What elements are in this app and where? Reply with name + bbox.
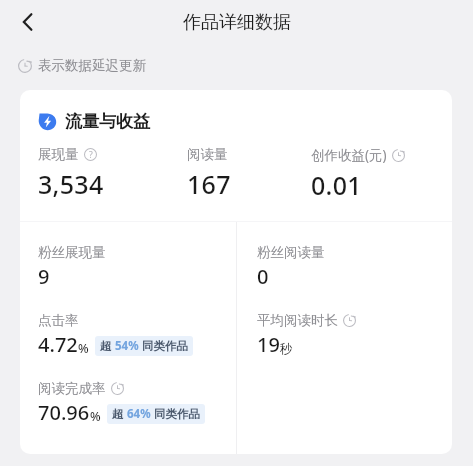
staticText: 0 [257, 263, 269, 290]
staticText: 作品详细数据 [183, 11, 291, 34]
staticText: ? [89, 149, 93, 161]
button[interactable]: Back [9, 3, 47, 41]
staticText: 秒 [280, 341, 293, 357]
staticText: 4.72 [38, 331, 78, 358]
button[interactable]: 超 [107, 404, 205, 424]
button[interactable]: 点击率 [38, 312, 193, 358]
staticText: 同类作品 [139, 338, 188, 354]
button[interactable]: 粉丝展现量 [38, 244, 106, 290]
staticText: 阅读完成率 [38, 380, 106, 397]
staticText: 167 [187, 167, 231, 201]
button[interactable]: 创作收益(元) [311, 146, 452, 202]
button[interactable]: 粉丝阅读量 [257, 244, 325, 290]
staticText: 超 [112, 406, 127, 422]
staticText: 表示数据延迟更新 [38, 57, 146, 74]
staticText: % [90, 408, 101, 425]
staticText: 3,534 [38, 167, 104, 201]
staticText: 平均阅读时长 [257, 312, 338, 329]
staticText: 粉丝阅读量 [257, 244, 325, 261]
staticText: 粉丝展现量 [38, 244, 106, 261]
staticText: 19 [257, 331, 280, 358]
button[interactable]: 流量与收益 [38, 111, 150, 132]
staticText: % [78, 340, 89, 357]
staticText: 流量与收益 [65, 111, 150, 132]
staticText: 超 [100, 338, 115, 354]
staticText: 创作收益(元) [311, 146, 387, 164]
button[interactable]: 平均阅读时长 [257, 312, 356, 358]
staticText: 9 [38, 263, 50, 290]
button[interactable]: 表示数据延迟更新 [18, 57, 146, 74]
staticText: 64% [127, 406, 151, 422]
staticText: 70.96 [38, 399, 90, 426]
button[interactable]: 阅读完成率 [38, 380, 205, 426]
staticText: 54% [115, 338, 139, 354]
staticText: 点击率 [38, 312, 79, 329]
button[interactable]: 阅读量 [187, 146, 311, 201]
staticText: 同类作品 [151, 406, 200, 422]
staticText: 0.01 [311, 168, 362, 202]
button[interactable]: 超 [95, 336, 193, 356]
button[interactable]: 展现量 [38, 146, 187, 201]
staticText: 阅读量 [187, 146, 228, 163]
staticText: 展现量 [38, 146, 79, 163]
